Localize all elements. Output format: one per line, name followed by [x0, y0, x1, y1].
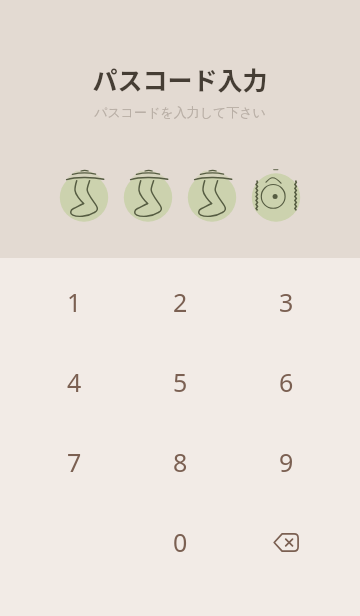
staticText: 2 — [173, 285, 188, 319]
button[interactable]: 8 — [127, 422, 233, 502]
staticText: 5 — [173, 365, 188, 399]
staticText: パスコードを入力して下さい — [0, 104, 360, 120]
button[interactable]: 4 — [21, 342, 127, 422]
staticText: 3 — [279, 285, 294, 319]
staticText: 0 — [173, 525, 188, 559]
staticText: 6 — [279, 365, 294, 399]
button[interactable]: Backspace — [233, 502, 339, 582]
button[interactable]: 9 — [233, 422, 339, 502]
button[interactable]: 5 — [127, 342, 233, 422]
other: Backspace — [264, 520, 308, 564]
staticText: パスコード入力 — [0, 61, 360, 97]
button[interactable]: 0 — [127, 502, 233, 582]
staticText: 9 — [279, 445, 294, 479]
staticText: 1 — [67, 285, 82, 319]
staticText: 8 — [173, 445, 188, 479]
button[interactable]: 7 — [21, 422, 127, 502]
button[interactable]: 6 — [233, 342, 339, 422]
staticText: 7 — [67, 445, 82, 479]
button[interactable]: 1 — [21, 262, 127, 342]
button[interactable]: 2 — [127, 262, 233, 342]
staticText: 4 — [67, 365, 82, 399]
button[interactable]: 3 — [233, 262, 339, 342]
